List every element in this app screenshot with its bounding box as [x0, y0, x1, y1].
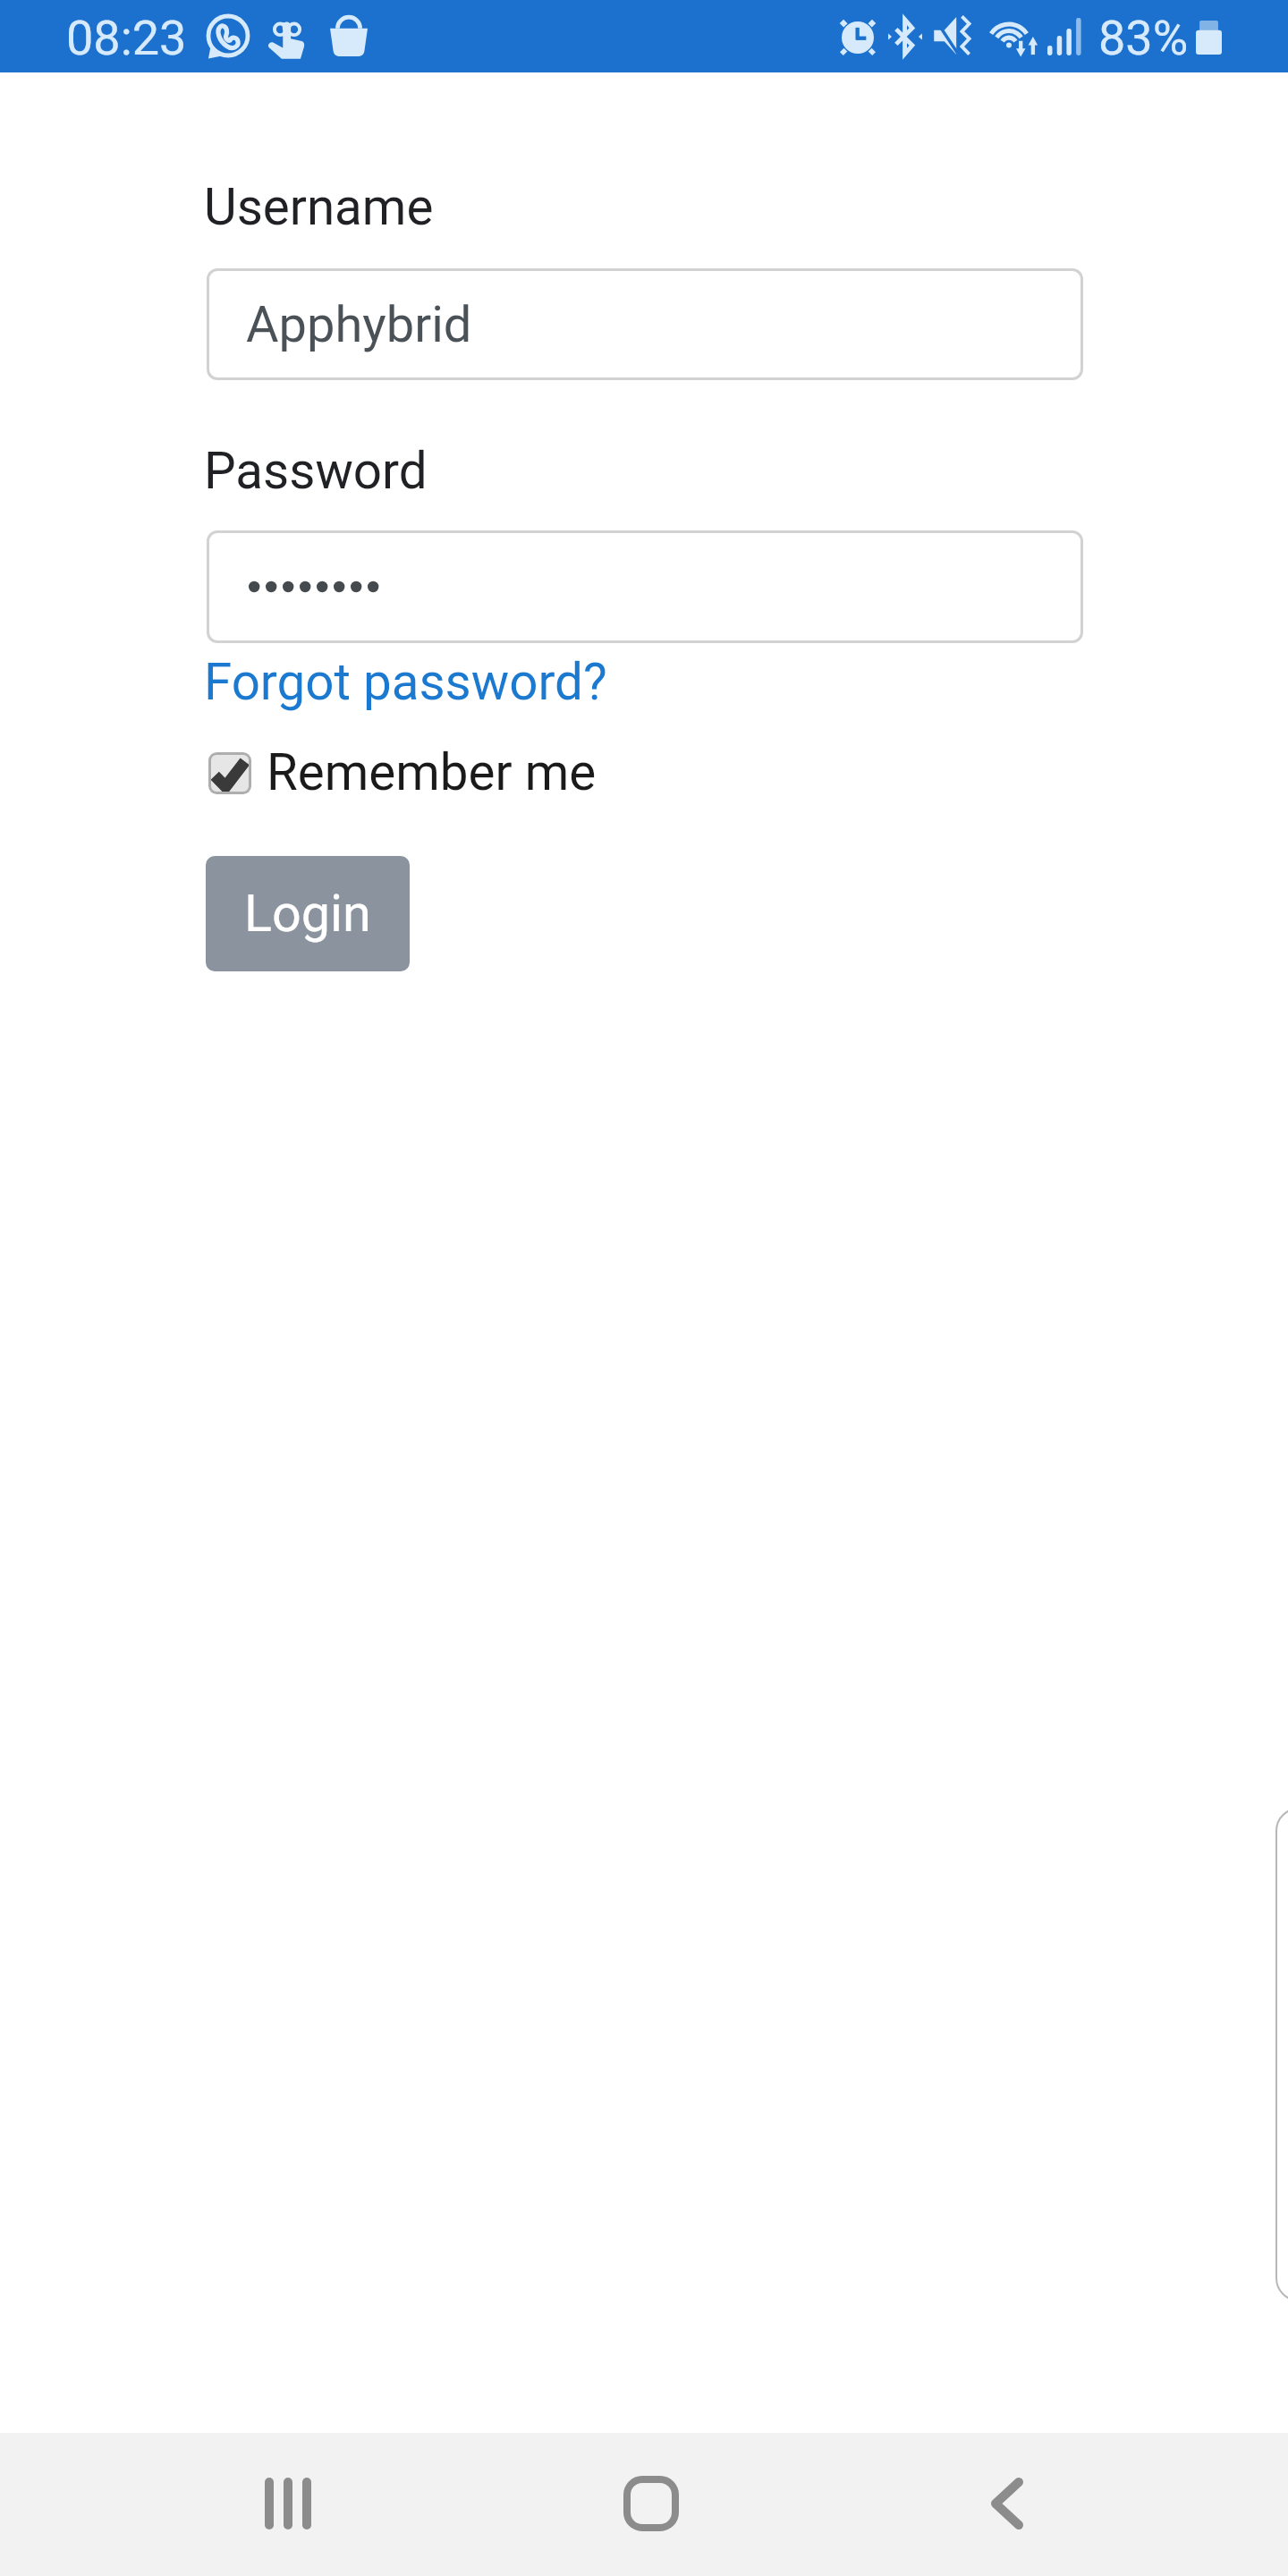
button[interactable] — [207, 530, 1083, 643]
staticText: Remember me — [267, 743, 597, 802]
staticText: 83% — [1098, 10, 1189, 66]
button[interactable]: Recent apps — [216, 2433, 360, 2576]
button[interactable]: Home — [580, 2433, 723, 2576]
button[interactable]: Remember me — [208, 743, 597, 802]
staticText: Login — [244, 884, 371, 944]
staticText: Apphybrid — [246, 295, 472, 354]
button[interactable]: Back — [936, 2433, 1080, 2576]
button[interactable]: Forgot password? — [204, 653, 607, 712]
staticText: Password — [204, 442, 428, 501]
button[interactable]: Apphybrid — [207, 268, 1083, 380]
button[interactable]: Login — [206, 856, 410, 971]
staticText: Username — [204, 178, 434, 237]
staticText: 08:23 — [66, 10, 187, 66]
